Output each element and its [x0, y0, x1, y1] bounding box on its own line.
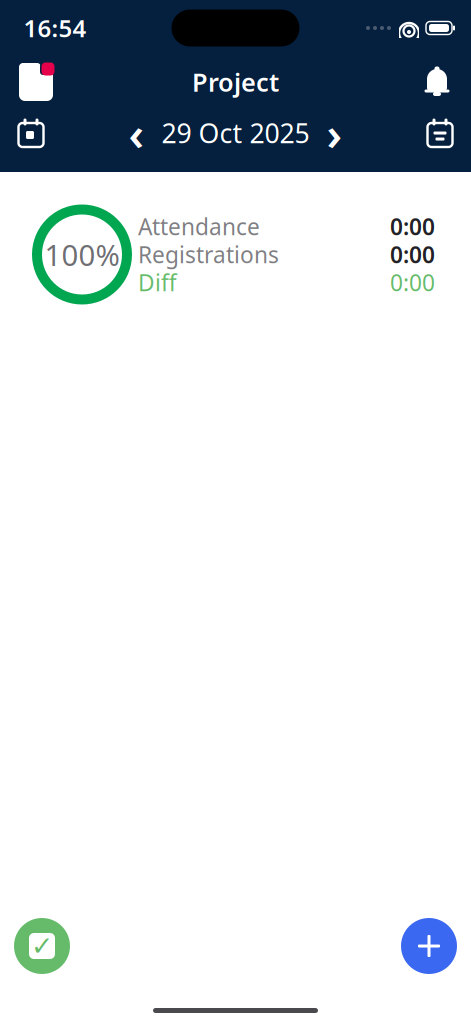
- staticText: 100%: [44, 235, 119, 274]
- staticText: Project: [192, 65, 279, 99]
- button[interactable]: Add: [401, 918, 457, 974]
- staticText: 16:54: [23, 12, 86, 44]
- button[interactable]: Agenda view: [401, 108, 471, 158]
- button[interactable]: Projects: [0, 56, 72, 108]
- staticText: 0:00: [390, 211, 435, 241]
- staticText: ‹: [128, 103, 144, 163]
- staticText: Registrations: [138, 239, 279, 269]
- button[interactable]: Next day: [317, 111, 351, 155]
- staticText: 29 Oct 2025: [161, 115, 309, 151]
- button[interactable]: Check in: [14, 918, 70, 974]
- staticText: ✓: [31, 931, 53, 961]
- staticText: 0:00: [390, 267, 435, 297]
- button[interactable]: Previous day: [119, 111, 153, 155]
- button[interactable]: Notifications: [399, 56, 471, 108]
- button[interactable]: 29 Oct 2025: [153, 111, 317, 155]
- button[interactable]: 100%: [0, 192, 471, 317]
- staticText: Diff: [138, 267, 177, 297]
- staticText: ›: [326, 103, 342, 163]
- staticText: Attendance: [138, 211, 260, 241]
- staticText: 0:00: [390, 239, 435, 269]
- button[interactable]: Day view: [0, 108, 70, 158]
